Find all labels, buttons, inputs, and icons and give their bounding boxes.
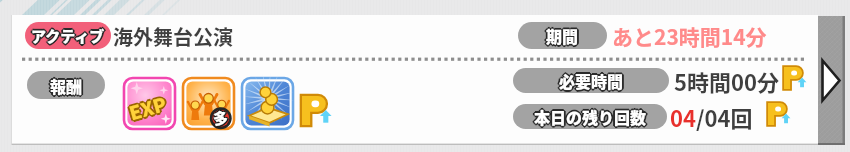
staticText: 必要時間 (558, 70, 623, 93)
staticText: 本日の残り回数 (533, 104, 646, 127)
staticText: アクティブ (29, 25, 103, 47)
staticText: EXP (125, 90, 168, 122)
staticText: 海外舞台公演 (113, 22, 233, 51)
staticText: 本日の残り回数 (534, 107, 647, 129)
staticText: アクティブ (30, 26, 104, 48)
staticText: 期間 (545, 23, 578, 46)
staticText: 報酬 (51, 73, 84, 96)
staticText: 期間 (548, 24, 581, 47)
staticText: アクティブ (32, 26, 106, 48)
staticText: 報酬 (51, 75, 84, 98)
staticText: 多 (213, 109, 229, 131)
staticText: /04回 (696, 101, 753, 133)
staticText: アクティブ (31, 25, 105, 47)
staticText: 多 (213, 107, 229, 129)
staticText: 本日の残り回数 (533, 106, 646, 129)
staticText: 報酬 (50, 72, 83, 95)
staticText: アクティブ (32, 24, 106, 46)
staticText: 多 (212, 108, 228, 130)
staticText: 期間 (547, 23, 580, 46)
staticText: 必要時間 (559, 69, 624, 92)
staticText: 本日の残り回数 (534, 105, 647, 128)
staticText: 本日の残り回数 (536, 105, 649, 128)
staticText: 多 (213, 106, 229, 128)
staticText: アクティブ (31, 27, 105, 49)
staticText: 本日の残り回数 (532, 105, 645, 128)
staticText: EXP (126, 91, 169, 123)
staticText: EXP (124, 90, 166, 121)
staticText: 報酬 (50, 76, 83, 99)
staticText: 期間 (547, 25, 580, 48)
staticText: 期間 (544, 24, 577, 47)
staticText: 必要時間 (559, 71, 624, 93)
staticText: 多 (214, 108, 230, 130)
staticText: アクティブ (31, 23, 105, 45)
staticText: 必要時間 (559, 68, 624, 90)
staticText: 多 (212, 107, 228, 129)
staticText: 報酬 (52, 74, 85, 97)
staticText: 期間 (546, 26, 579, 49)
staticText: 5時間00分 (674, 65, 779, 97)
button[interactable]: Next (818, 16, 845, 145)
staticText: 報酬 (48, 74, 81, 97)
staticText: 必要時間 (560, 70, 625, 93)
staticText: EXP (126, 89, 168, 121)
staticText: 報酬 (49, 75, 82, 98)
staticText: 期間 (545, 25, 578, 48)
staticText: あと23時間14分 (612, 21, 767, 51)
staticText: EXP (128, 89, 170, 120)
staticText: 必要時間 (558, 68, 623, 91)
staticText: EXP (125, 87, 168, 119)
staticText: アクティブ (30, 24, 104, 46)
staticText: 本日の残り回数 (535, 104, 648, 127)
staticText: 必要時間 (557, 69, 622, 92)
staticText: 報酬 (50, 74, 83, 97)
staticText: EXP (126, 88, 169, 120)
staticText: 必要時間 (560, 68, 625, 91)
staticText: アクティブ (33, 25, 107, 47)
staticText: EXP (124, 88, 167, 120)
staticText: 本日の残り回数 (535, 106, 648, 129)
staticText: 期間 (546, 22, 579, 45)
button[interactable]: アクティブ (11, 15, 818, 145)
staticText: 多 (214, 106, 230, 128)
staticText: 04 (670, 101, 696, 133)
staticText: 報酬 (49, 73, 82, 96)
staticText: 本日の残り回数 (534, 104, 647, 126)
staticText: 多 (215, 107, 231, 129)
staticText: EXP (127, 90, 169, 121)
staticText: 多 (212, 106, 228, 128)
staticText: 期間 (546, 24, 579, 47)
staticText: 必要時間 (561, 69, 626, 92)
